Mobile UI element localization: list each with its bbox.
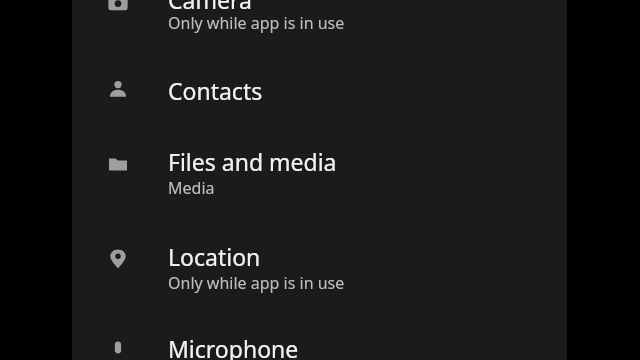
staticText: Media <box>168 177 215 199</box>
button[interactable]: Camera permission <box>72 0 567 32</box>
staticText: Camera <box>168 0 252 15</box>
button[interactable]: Microphone permission <box>72 322 567 360</box>
button[interactable]: Files and media permission <box>72 132 567 206</box>
staticText: Only while app is in use <box>168 272 345 294</box>
staticText: Only while app is in use <box>168 12 345 34</box>
button[interactable]: Contacts permission <box>72 60 567 118</box>
staticText: Location <box>168 241 261 272</box>
button[interactable]: Location permission <box>72 228 567 302</box>
staticText: Files and media <box>168 146 337 177</box>
staticText: Microphone <box>168 333 299 360</box>
staticText: Contacts <box>168 75 263 106</box>
